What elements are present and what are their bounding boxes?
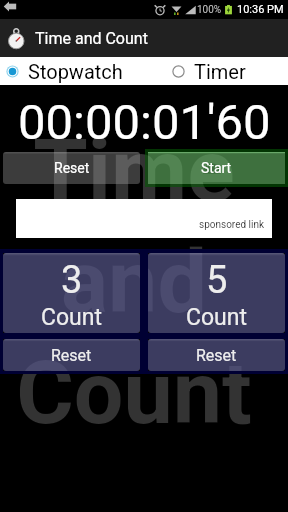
button[interactable]: Start xyxy=(145,149,288,187)
staticText: Timer xyxy=(194,60,246,83)
staticText: Time and Count xyxy=(35,29,148,48)
staticText: Reset xyxy=(54,160,90,176)
staticText: sponsored link xyxy=(199,219,265,231)
button[interactable]: Timer xyxy=(144,57,288,85)
button[interactable]: Stopwatch xyxy=(0,57,144,85)
button[interactable]: 3 xyxy=(3,253,140,333)
staticText: 5 xyxy=(206,258,228,303)
staticText: Stopwatch xyxy=(28,60,123,83)
button[interactable]: Reset xyxy=(148,339,285,371)
button[interactable]: Back xyxy=(3,0,18,13)
button[interactable]: 5 xyxy=(148,253,285,333)
staticText: Count xyxy=(16,341,252,444)
staticText: Reset xyxy=(196,346,237,365)
staticText: Reset xyxy=(51,346,92,365)
staticText: Time xyxy=(33,119,235,222)
button[interactable]: Reset xyxy=(3,339,140,371)
staticText: and xyxy=(61,230,207,333)
staticText: 00:00:01'60 xyxy=(18,94,271,146)
button[interactable]: sponsored link xyxy=(16,199,272,238)
staticText: Count xyxy=(41,304,102,331)
staticText: 10:36 PM xyxy=(237,3,284,16)
button[interactable]: Reset xyxy=(3,152,140,184)
staticText: 3 xyxy=(61,258,83,303)
staticText: Start xyxy=(201,160,232,176)
staticText: Count xyxy=(186,304,247,331)
staticText: 100% xyxy=(197,4,222,16)
